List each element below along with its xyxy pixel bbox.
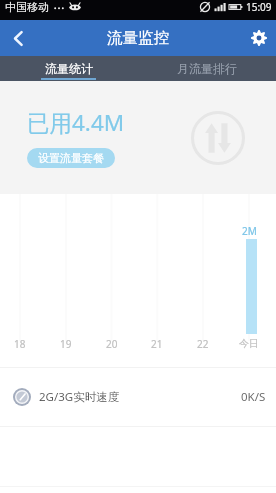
button[interactable]: 2G/3G实时速度 [0, 368, 276, 426]
button[interactable]: Settings [242, 20, 276, 56]
staticText: 18 [14, 337, 26, 351]
staticText: 设置流量套餐 [38, 151, 104, 165]
staticText: 2G/3G实时速度 [39, 389, 120, 405]
staticText: 20 [106, 337, 118, 351]
button[interactable]: 设置流量套餐 [27, 148, 115, 168]
staticText: 19 [60, 337, 72, 351]
staticText: 2M [242, 224, 257, 238]
button[interactable]: 月流量排行 [138, 56, 276, 81]
button[interactable]: 流量统计 [0, 56, 138, 81]
button[interactable]: Back [0, 20, 36, 56]
staticText: 流量监控 [107, 28, 169, 48]
staticText: 21 [151, 337, 163, 351]
staticText: 15:09 [246, 0, 272, 14]
staticText: 今日 [239, 337, 259, 350]
staticText: 0K/S [241, 389, 266, 405]
staticText: 已用4.4M [27, 107, 125, 138]
staticText: 流量统计 [45, 61, 93, 76]
staticText: 中国移动 [5, 0, 49, 14]
staticText: 月流量排行 [177, 61, 237, 76]
staticText: 22 [197, 337, 209, 351]
